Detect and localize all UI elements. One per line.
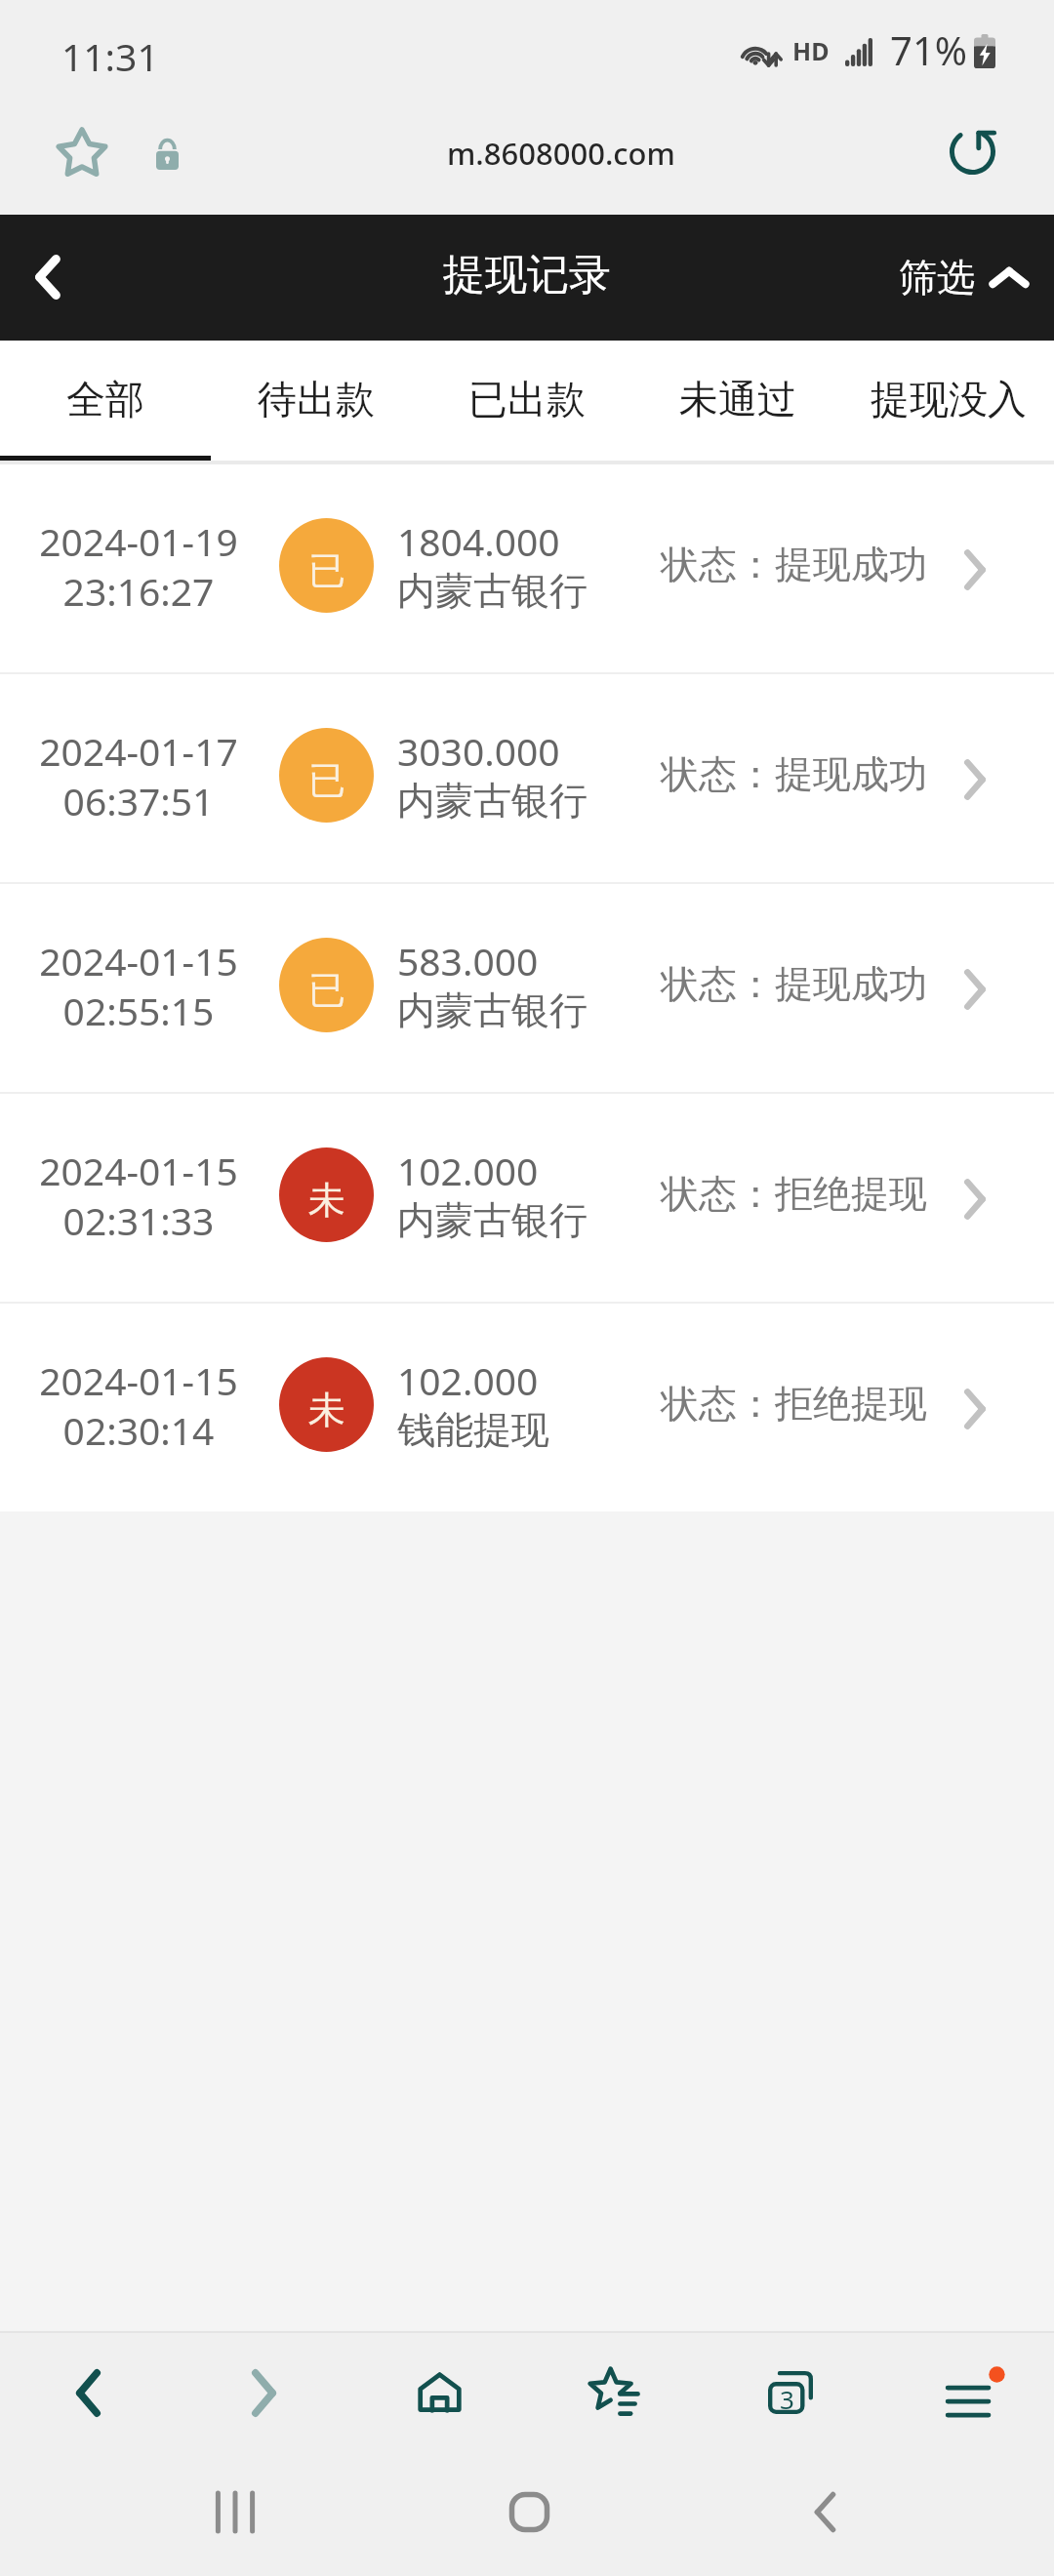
staticText: 状态：拒绝提现	[661, 1170, 927, 1218]
button[interactable]: 2024-01-15 02:30:14	[0, 1304, 1054, 1511]
staticText: 3030.000 内蒙古银行	[397, 725, 588, 825]
staticText: 状态：拒绝提现	[661, 1380, 927, 1428]
staticText: 待出款	[258, 375, 375, 423]
staticText: 已	[308, 757, 345, 804]
staticText: HD	[792, 34, 830, 67]
button[interactable]: 2024-01-19 23:16:27	[0, 464, 1054, 672]
staticText: 已	[308, 547, 345, 594]
staticText: 2024-01-15 02:55:15	[39, 935, 238, 1036]
button[interactable]: Back	[0, 2333, 176, 2452]
staticText: 状态：提现成功	[661, 960, 927, 1008]
staticText: 提现没入	[871, 375, 1027, 423]
button[interactable]: Home	[351, 2333, 527, 2452]
staticText: 未	[308, 1177, 345, 1224]
button[interactable]: 提现没入	[843, 341, 1054, 464]
staticText: 3	[780, 2382, 794, 2416]
button[interactable]: Home	[461, 2465, 597, 2558]
button[interactable]: m.8608000.com	[447, 133, 675, 174]
button[interactable]: Menu	[878, 2333, 1054, 2452]
staticText: 全部	[66, 375, 144, 423]
button[interactable]: Forward	[176, 2333, 351, 2452]
staticText: 2024-01-19 23:16:27	[39, 515, 238, 617]
button[interactable]: Bookmarks	[527, 2333, 703, 2452]
staticText: 筛选	[899, 254, 975, 302]
staticText: 1804.000 内蒙古银行	[397, 515, 588, 616]
staticText: 11:31	[61, 30, 159, 82]
staticText: 2024-01-15 02:31:33	[39, 1145, 238, 1246]
button[interactable]: Bookmark	[35, 106, 129, 200]
button[interactable]: 已出款	[422, 341, 632, 464]
button[interactable]: Back	[0, 230, 96, 326]
button[interactable]: 未通过	[632, 341, 843, 464]
button[interactable]: 2024-01-17 06:37:51	[0, 674, 1054, 882]
staticText: 2024-01-15 02:30:14	[39, 1354, 238, 1456]
staticText: 102.000 内蒙古银行	[397, 1145, 588, 1245]
staticText: 2024-01-17 06:37:51	[39, 725, 238, 826]
button[interactable]: 待出款	[211, 341, 422, 464]
button[interactable]: Back	[756, 2465, 893, 2558]
button[interactable]: 2024-01-15 02:55:15	[0, 884, 1054, 1092]
staticText: 102.000 钱能提现	[397, 1354, 549, 1455]
button[interactable]: Refresh	[929, 109, 1017, 197]
staticText: 状态：提现成功	[661, 750, 927, 798]
staticText: 583.000 内蒙古银行	[397, 935, 588, 1035]
staticText: 提现记录	[443, 249, 611, 302]
staticText: 71%	[890, 23, 967, 76]
button[interactable]: Site security	[125, 111, 209, 195]
button[interactable]: Tabs	[703, 2333, 878, 2452]
button[interactable]: Recents	[167, 2465, 304, 2558]
button[interactable]: 2024-01-15 02:31:33	[0, 1094, 1054, 1302]
staticText: 未	[308, 1387, 345, 1433]
staticText: 状态：提现成功	[661, 541, 927, 588]
button[interactable]: 筛选	[899, 254, 1028, 302]
staticText: 已出款	[468, 375, 586, 423]
button[interactable]: 全部	[0, 341, 211, 464]
staticText: 未通过	[679, 375, 796, 423]
staticText: 已	[308, 967, 345, 1014]
